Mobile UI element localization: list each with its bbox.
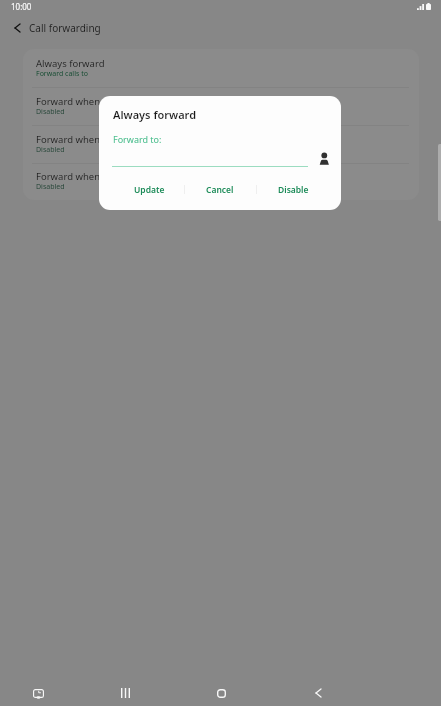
button[interactable]: Cancel [184,179,256,201]
button[interactable]: Disable [257,179,329,201]
button[interactable]: Forward when busy [23,87,419,125]
staticText: Call forwarding [29,21,101,35]
button[interactable]: Forward when unreachable [23,162,419,200]
staticText: 10:00 [11,1,32,12]
staticText: Always forward [36,57,105,70]
staticText: Forward when busy [36,95,124,108]
staticText: Cancel [206,184,234,196]
staticText: Disabled [36,145,65,155]
button[interactable]: Always forward [23,49,419,87]
staticText: Forward calls to [36,69,88,79]
staticText: Disable [278,184,309,196]
staticText: Forward when unanswered [36,133,158,146]
staticText: Update [134,184,165,196]
button[interactable]: Recent apps [111,679,139,706]
staticText: Forward to: [113,133,162,145]
button[interactable]: Home [207,679,235,706]
staticText: Disabled [36,182,65,192]
staticText: Disabled [36,107,65,117]
button[interactable]: Choose contact [314,145,335,170]
staticText: Always forward [113,107,197,122]
staticText: Forward when unreachable [36,170,159,183]
button[interactable]: Forward when unanswered [23,125,419,163]
button[interactable]: Navigate up [5,16,29,40]
button[interactable]: Screenshot [24,679,52,706]
button[interactable]: Update [113,179,185,201]
button[interactable]: Back [304,679,332,706]
